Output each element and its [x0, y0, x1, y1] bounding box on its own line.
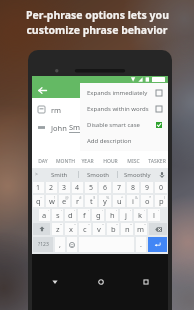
button[interactable]: (	[155, 195, 167, 207]
staticText: 9	[145, 183, 150, 193]
button[interactable]: "	[65, 223, 77, 235]
staticText: %	[106, 195, 110, 200]
button[interactable]: Enter	[148, 237, 167, 252]
staticText: ,	[59, 240, 61, 250]
staticText: Smooth	[87, 171, 110, 179]
button[interactable]: "	[121, 223, 133, 235]
button[interactable]: 9	[141, 182, 153, 193]
staticText: d	[68, 210, 73, 220]
staticText: TASKER	[148, 158, 166, 165]
button[interactable]: 8	[127, 182, 139, 193]
button[interactable]: '	[39, 209, 50, 221]
button[interactable]: '	[52, 209, 63, 221]
button[interactable]: ?123	[33, 237, 53, 252]
button[interactable]: MONTH	[54, 155, 76, 168]
staticText: 4	[75, 183, 80, 193]
button[interactable]: Emoji	[67, 237, 77, 252]
staticText: ~	[40, 195, 43, 200]
staticText: "	[116, 223, 118, 228]
button[interactable]: 6	[99, 182, 111, 193]
button[interactable]: Expands within words	[80, 101, 168, 117]
staticText: 8	[131, 183, 136, 193]
button[interactable]: Backspace	[149, 223, 167, 235]
button[interactable]: John	[32, 120, 168, 135]
button[interactable]: .	[136, 237, 146, 252]
button[interactable]: HOUR	[99, 155, 122, 168]
staticText: '	[88, 209, 89, 214]
button[interactable]: More suggestions	[32, 168, 41, 181]
button[interactable]: 0	[155, 182, 167, 193]
staticText: p	[159, 196, 164, 206]
button[interactable]: '	[65, 209, 76, 221]
button[interactable]: Back	[32, 254, 78, 310]
button[interactable]: *	[141, 195, 153, 207]
button[interactable]: '	[106, 209, 118, 221]
button[interactable]: 7	[113, 182, 125, 193]
button[interactable]: !	[46, 195, 57, 207]
button[interactable]: "	[135, 223, 147, 235]
staticText: '	[144, 209, 145, 214]
button[interactable]: ^	[113, 195, 125, 207]
staticText: John	[51, 123, 69, 133]
staticText: (	[164, 195, 166, 200]
button[interactable]: ,	[55, 237, 65, 252]
button[interactable]: ~	[33, 195, 44, 207]
button[interactable]: Recents	[123, 254, 168, 310]
button[interactable]: Disable smart case	[80, 117, 168, 133]
button[interactable]: 3	[59, 182, 70, 193]
staticText: i	[132, 196, 134, 206]
staticText: "	[74, 223, 76, 228]
button[interactable]: &	[127, 195, 139, 207]
button[interactable]: MISC	[122, 155, 145, 168]
button[interactable]: DAY	[32, 155, 54, 168]
button[interactable]: '	[148, 209, 160, 221]
button[interactable]: 4	[72, 182, 83, 193]
button[interactable]: Voice input	[156, 168, 168, 181]
staticText: Smith	[69, 122, 90, 132]
staticText: '	[130, 209, 131, 214]
button[interactable]: "	[79, 223, 91, 235]
button[interactable]: Shift	[33, 223, 50, 235]
staticText: !	[54, 195, 56, 200]
staticText: g	[96, 210, 101, 220]
staticText: x	[69, 224, 73, 234]
staticText: @	[65, 195, 69, 200]
button[interactable]: $	[85, 195, 97, 207]
button[interactable]: Add description	[80, 133, 168, 149]
button[interactable]: '	[134, 209, 146, 221]
staticText: Disable smart case	[87, 121, 156, 129]
button[interactable]: 2	[46, 182, 57, 193]
button[interactable]: Expands immediately	[80, 85, 168, 101]
staticText: 5	[89, 183, 94, 193]
staticText: .	[140, 240, 142, 250]
staticText: s	[56, 210, 60, 220]
button[interactable]: "	[52, 223, 63, 235]
button[interactable]: '	[92, 209, 104, 221]
staticText: 6	[103, 183, 108, 193]
button[interactable]: #	[72, 195, 83, 207]
button[interactable]: rm	[32, 102, 168, 117]
button[interactable]: "	[93, 223, 105, 235]
staticText: a	[42, 210, 47, 220]
button[interactable]: TASKER	[145, 155, 168, 168]
button[interactable]: "	[107, 223, 119, 235]
staticText: k	[138, 210, 143, 220]
button[interactable]: '	[120, 209, 132, 221]
button[interactable]: Smooth	[79, 168, 117, 181]
button[interactable]: '	[78, 209, 90, 221]
button[interactable]: 1	[33, 182, 44, 193]
button[interactable]: Home	[78, 254, 123, 310]
staticText: b	[111, 224, 116, 234]
button[interactable]: 5	[85, 182, 97, 193]
button[interactable]: %	[99, 195, 111, 207]
button[interactable]: Back	[32, 83, 168, 98]
button[interactable]: Smoothly	[118, 168, 156, 181]
button[interactable]: Smith	[41, 168, 78, 181]
staticText: "	[60, 223, 62, 228]
staticText: '	[61, 209, 62, 214]
button[interactable]: @	[59, 195, 70, 207]
button[interactable]: YEAR	[76, 155, 99, 168]
staticText: h	[110, 210, 115, 220]
staticText: customize phrase behavior	[26, 23, 168, 37]
